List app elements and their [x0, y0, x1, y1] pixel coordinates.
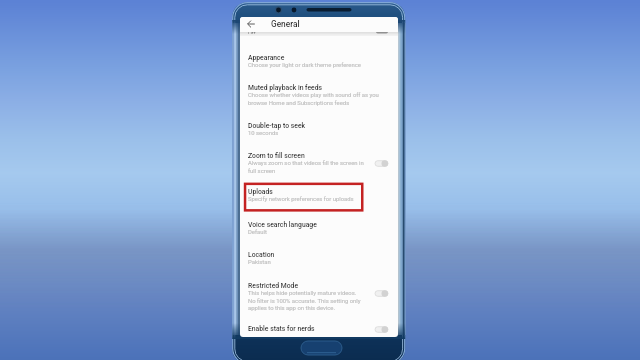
- staticText: Location: [248, 251, 275, 259]
- staticText: 10 seconds: [248, 130, 279, 137]
- button[interactable]: Double-tap to seek: [240, 121, 398, 138]
- staticText: Enable stats for nerds: [248, 325, 315, 333]
- staticText: Pakistan: [248, 259, 271, 266]
- button[interactable]: Off: [240, 32, 398, 36]
- staticText: Appearance: [248, 54, 285, 62]
- button[interactable]: Back: [245, 18, 257, 30]
- staticText: Off: [248, 30, 256, 34]
- button[interactable]: Voice search language: [240, 220, 398, 237]
- button[interactable]: Location: [240, 250, 398, 267]
- staticText: Double-tap to seek: [248, 122, 306, 130]
- staticText: This helps hide potentially mature video…: [248, 290, 361, 311]
- staticText: Choose whether videos play with sound of…: [248, 92, 379, 106]
- button[interactable]: Uploads: [240, 187, 398, 204]
- staticText: Voice search language: [248, 221, 317, 229]
- staticText: Restricted Mode: [248, 282, 299, 290]
- button[interactable]: Enable stats for nerds: [240, 324, 398, 334]
- staticText: Always zoom so that videos fill the scre…: [248, 160, 364, 174]
- staticText: Default: [248, 229, 267, 236]
- button[interactable]: Appearance: [240, 53, 398, 70]
- staticText: General: [271, 19, 300, 29]
- staticText: Specify network preferences for uploads: [248, 196, 354, 203]
- button[interactable]: Muted playback in feeds: [240, 83, 398, 107]
- staticText: Uploads: [248, 188, 273, 196]
- staticText: Choose your light or dark theme preferen…: [248, 62, 361, 69]
- button[interactable]: Restricted Mode: [240, 281, 398, 312]
- staticText: Muted playback in feeds: [248, 84, 323, 92]
- button[interactable]: Zoom to fill screen: [240, 151, 398, 175]
- staticText: Zoom to fill screen: [248, 152, 305, 160]
